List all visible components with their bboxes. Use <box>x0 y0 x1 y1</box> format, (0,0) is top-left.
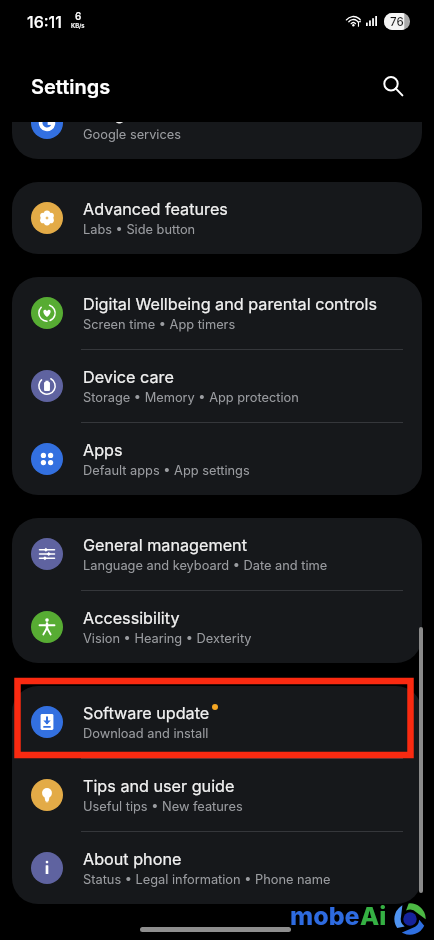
staticText: Screen time • App timers <box>83 317 236 332</box>
button[interactable]: Google <box>12 122 422 159</box>
staticText: 6 <box>75 10 82 22</box>
button[interactable]: About phone <box>12 832 422 904</box>
staticText: Status • Legal information • Phone name <box>83 872 331 887</box>
staticText: Ai <box>360 901 387 931</box>
staticText: Storage • Memory • App protection <box>83 390 299 405</box>
staticText: Advanced features <box>83 199 228 219</box>
staticText: About phone <box>83 849 182 869</box>
staticText: Vision • Hearing • Dexterity <box>83 631 252 646</box>
staticText: Labs • Side button <box>83 222 196 237</box>
button[interactable]: Software update <box>12 686 422 758</box>
staticText: Digital Wellbeing and parental controls <box>83 294 377 314</box>
staticText: Default apps • App settings <box>83 463 250 478</box>
button[interactable]: Search <box>373 66 413 106</box>
button[interactable]: Advanced features <box>12 182 422 254</box>
staticText: Settings <box>31 75 111 99</box>
button[interactable]: Device care <box>12 350 422 422</box>
staticText: mobe <box>290 901 360 931</box>
button[interactable]: Digital Wellbeing and parental controls <box>12 277 422 349</box>
staticText: Software update <box>83 703 210 723</box>
staticText: Useful tips • New features <box>83 799 243 814</box>
staticText: Google <box>83 122 138 124</box>
staticText: 76 <box>390 15 404 29</box>
staticText: Device care <box>83 367 174 387</box>
button[interactable]: Apps <box>12 423 422 495</box>
staticText: Tips and user guide <box>83 776 235 796</box>
staticText: 16:11 <box>27 12 62 31</box>
staticText: Accessibility <box>83 608 180 628</box>
button[interactable]: Accessibility <box>12 591 422 663</box>
button[interactable]: General management <box>12 518 422 590</box>
staticText: Download and install <box>83 726 209 741</box>
staticText: General management <box>83 535 247 555</box>
staticText: Apps <box>83 440 123 460</box>
button[interactable]: Tips and user guide <box>12 759 422 831</box>
staticText: KB/s <box>71 22 85 29</box>
staticText: Language and keyboard • Date and time <box>83 558 328 573</box>
staticText: Google services <box>83 127 181 142</box>
